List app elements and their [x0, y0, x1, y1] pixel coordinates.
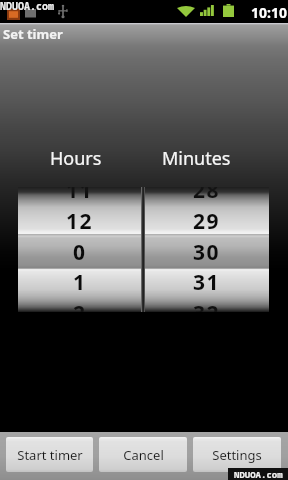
staticText: Minutes: [162, 146, 231, 171]
staticText: Set timer: [3, 25, 63, 43]
staticText: 29: [193, 207, 221, 236]
staticText: 10:10: [251, 3, 287, 22]
button[interactable]: Settings: [193, 437, 281, 472]
staticText: Start timer: [17, 446, 83, 464]
staticText: 28: [193, 187, 221, 205]
button[interactable]: Start timer: [6, 437, 93, 472]
staticText: 32: [193, 299, 221, 312]
staticText: 2: [73, 299, 87, 312]
button[interactable]: Cancel: [99, 437, 187, 472]
staticText: NDUOA.com: [234, 468, 283, 480]
staticText: Settings: [212, 446, 262, 464]
staticText: 31: [193, 268, 221, 297]
staticText: 30: [193, 238, 221, 267]
staticText: 11: [66, 187, 94, 205]
staticText: 0: [73, 238, 87, 267]
staticText: Hours: [50, 146, 102, 171]
staticText: Cancel: [123, 446, 164, 464]
staticText: 12: [66, 207, 94, 236]
staticText: 1: [73, 268, 87, 297]
staticText: NDUOA.com: [0, 0, 54, 13]
